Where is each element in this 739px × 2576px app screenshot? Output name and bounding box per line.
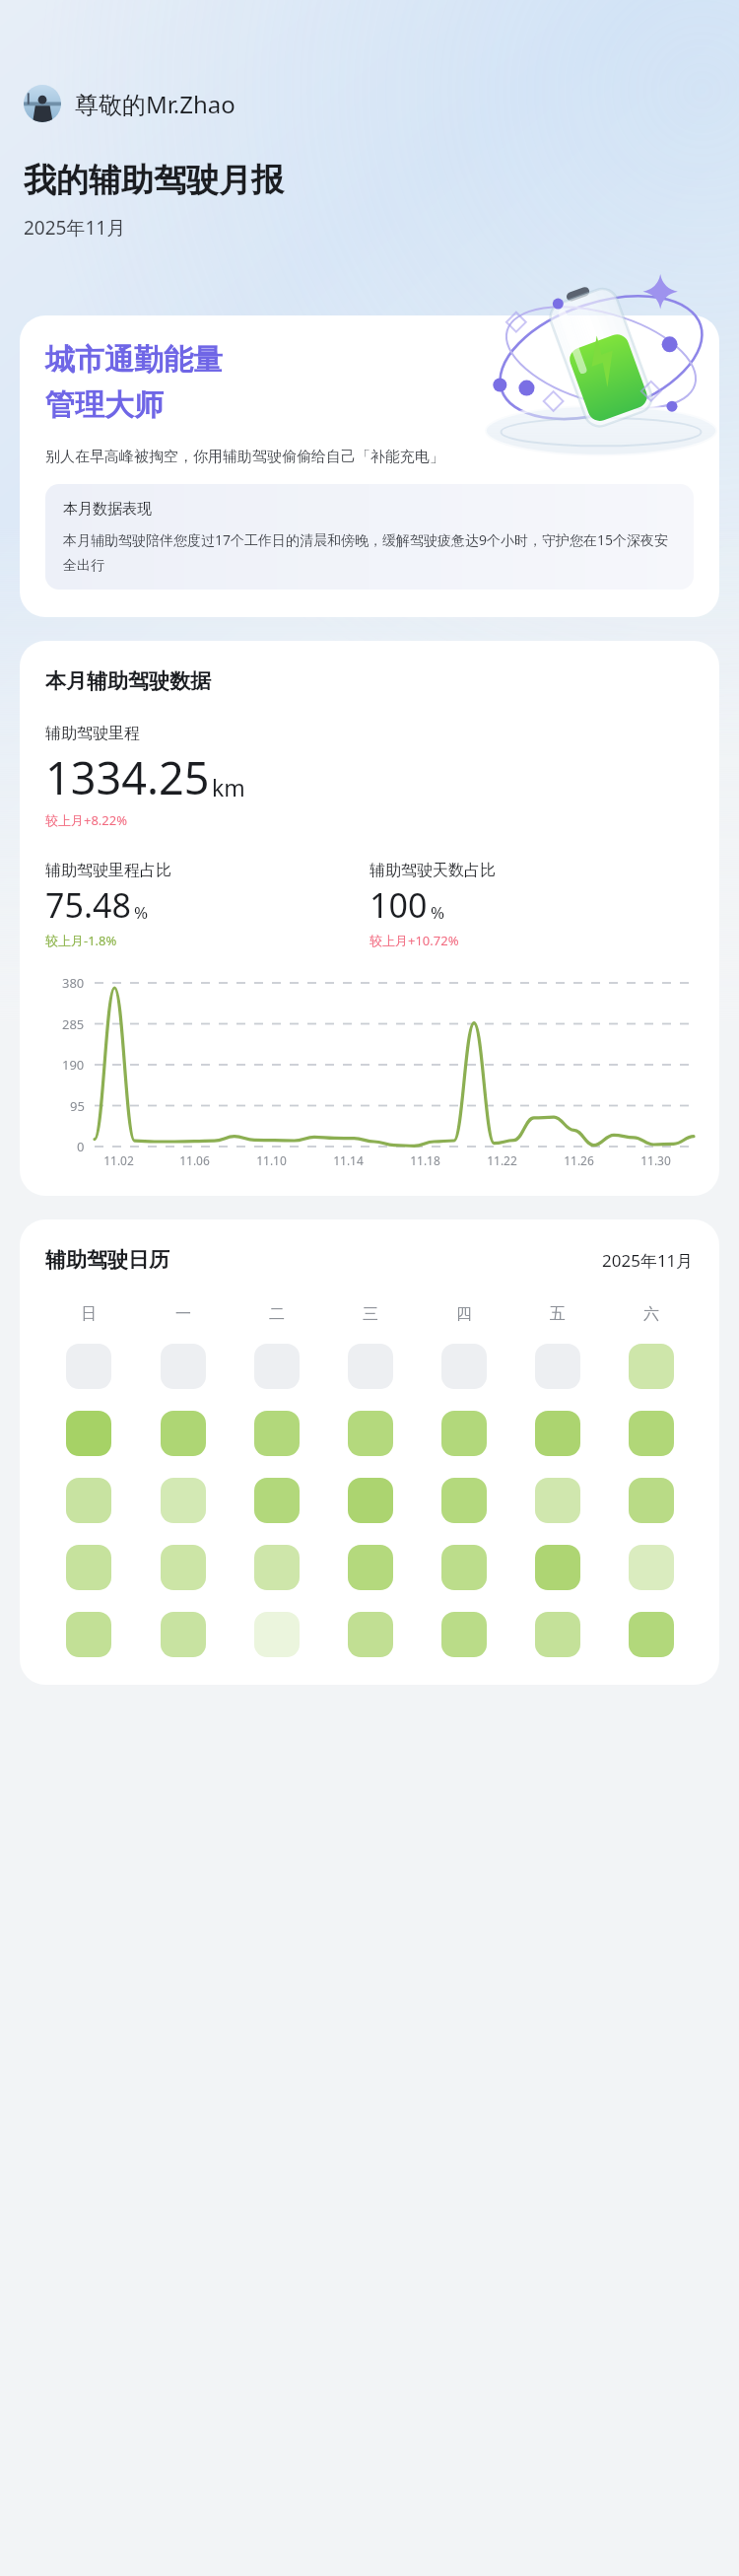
staticText: 四 — [456, 1304, 472, 1324]
staticText: 二 — [269, 1304, 285, 1324]
staticText: 辅助驾驶天数占比 — [369, 861, 496, 880]
button[interactable]: 日期 — [254, 1612, 300, 1657]
button[interactable]: 日期 — [348, 1411, 393, 1456]
button[interactable]: 城市通勤能量 — [20, 315, 719, 617]
staticText: 本月辅助驾驶数据 — [45, 668, 211, 694]
staticText: 75.48 — [45, 882, 131, 928]
staticText: 辅助驾驶里程占比 — [45, 861, 171, 880]
button[interactable]: 日期 — [441, 1612, 487, 1657]
staticText: 管理大师 — [45, 386, 164, 424]
staticText: 辅助驾驶日历 — [45, 1247, 169, 1273]
staticText: 城市通勤能量 — [45, 341, 223, 379]
button[interactable]: 日期 — [161, 1545, 206, 1590]
staticText: 我的辅助驾驶月报 — [24, 160, 284, 201]
button[interactable]: 本月辅助驾驶数据 — [20, 641, 719, 1196]
staticText: 本月数据表现 — [63, 500, 152, 519]
staticText: 较上月-1.8% — [45, 932, 117, 949]
button[interactable]: 日期 — [66, 1411, 111, 1456]
staticText: 1334.25 — [45, 747, 210, 807]
staticText: 五 — [550, 1304, 566, 1324]
staticText: 本月辅助驾驶陪伴您度过17个工作日的清晨和傍晚，缓解驾驶疲惫达9个小时，守护您在… — [63, 530, 676, 574]
button[interactable]: 日期 — [441, 1545, 487, 1590]
staticText: 较上月+8.22% — [45, 811, 128, 829]
staticText: 285 — [62, 1015, 85, 1033]
staticText: 380 — [62, 974, 85, 992]
button[interactable]: 日期 — [441, 1478, 487, 1523]
staticText: 11.26 — [564, 1152, 594, 1168]
button[interactable]: 日期 — [254, 1344, 300, 1389]
button[interactable]: 日期 — [254, 1478, 300, 1523]
staticText: 别人在早高峰被掏空，你用辅助驾驶偷偷给自己「补能充电」 — [45, 448, 444, 466]
staticText: km — [212, 772, 245, 802]
staticText: 尊敬的Mr.Zhao — [75, 88, 235, 120]
staticText: 11.14 — [333, 1152, 364, 1168]
staticText: 三 — [363, 1304, 378, 1324]
button[interactable]: 日期 — [348, 1478, 393, 1523]
button[interactable]: 日期 — [535, 1344, 580, 1389]
button[interactable]: 日期 — [161, 1411, 206, 1456]
button[interactable]: 日期 — [348, 1344, 393, 1389]
staticText: % — [431, 901, 445, 924]
button[interactable]: 日期 — [161, 1612, 206, 1657]
button[interactable]: 日期 — [629, 1411, 674, 1456]
button[interactable]: 日期 — [66, 1612, 111, 1657]
button[interactable]: 日期 — [535, 1545, 580, 1590]
staticText: 2025年11月 — [24, 215, 126, 241]
staticText: 11.22 — [487, 1152, 517, 1168]
staticText: 11.18 — [410, 1152, 440, 1168]
button[interactable]: 日期 — [66, 1545, 111, 1590]
staticText: 11.10 — [256, 1152, 287, 1168]
button[interactable]: 日期 — [254, 1545, 300, 1590]
button[interactable]: 日期 — [535, 1411, 580, 1456]
button[interactable]: 辅助驾驶天数占比 — [369, 861, 694, 949]
button[interactable]: 日期 — [629, 1612, 674, 1657]
button[interactable]: 日期 — [629, 1478, 674, 1523]
staticText: 0 — [77, 1138, 85, 1155]
button[interactable]: 日期 — [535, 1478, 580, 1523]
button[interactable]: 日期 — [535, 1612, 580, 1657]
button[interactable]: 日期 — [66, 1344, 111, 1389]
staticText: 较上月+10.72% — [369, 932, 459, 949]
staticText: 辅助驾驶里程 — [45, 724, 140, 743]
button[interactable]: 日期 — [161, 1478, 206, 1523]
button[interactable]: 日期 — [254, 1411, 300, 1456]
staticText: 190 — [62, 1056, 85, 1074]
button[interactable]: 辅助驾驶里程占比 — [45, 861, 369, 949]
button[interactable]: 辅助驾驶日历 — [20, 1219, 719, 1685]
button[interactable]: 日期 — [629, 1344, 674, 1389]
staticText: 11.02 — [103, 1152, 134, 1168]
button[interactable]: 日期 — [66, 1478, 111, 1523]
button[interactable]: 日期 — [161, 1344, 206, 1389]
staticText: 95 — [70, 1097, 85, 1115]
staticText: 一 — [175, 1304, 191, 1324]
staticText: % — [134, 901, 149, 924]
staticText: 11.06 — [179, 1152, 210, 1168]
button[interactable]: 日期 — [441, 1411, 487, 1456]
staticText: 100 — [369, 882, 428, 928]
staticText: 11.30 — [640, 1152, 671, 1168]
button[interactable]: 日期 — [348, 1612, 393, 1657]
staticText: 2025年11月 — [602, 1249, 694, 1272]
staticText: 日 — [81, 1304, 97, 1324]
staticText: 六 — [643, 1304, 659, 1324]
button[interactable]: 日期 — [348, 1545, 393, 1590]
button[interactable]: 尊敬的Mr.Zhao — [24, 85, 235, 122]
button[interactable]: 日期 — [441, 1344, 487, 1389]
button[interactable]: 日期 — [629, 1545, 674, 1590]
